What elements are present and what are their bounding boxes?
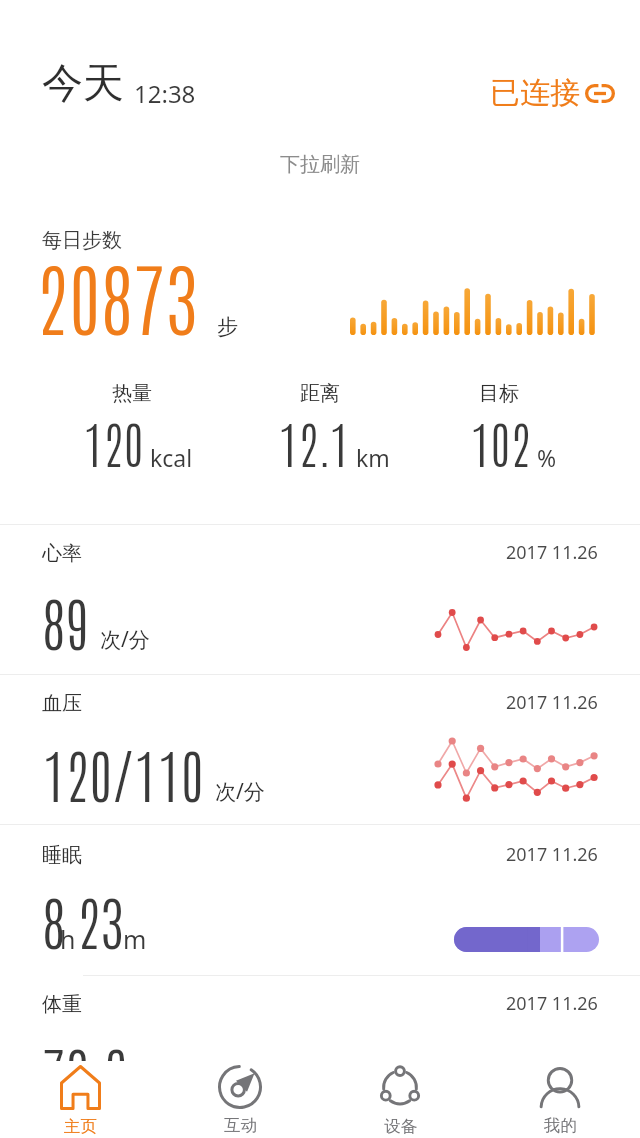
other: 互动 <box>218 1065 262 1109</box>
staticText: 120/110 <box>42 735 205 810</box>
staticText: 今天 <box>42 58 124 110</box>
staticText: kcal <box>150 442 193 473</box>
staticText: 23 <box>77 882 125 957</box>
staticText: 次/分 <box>100 625 150 654</box>
staticText: 102 <box>470 409 531 474</box>
staticText: 睡眠 <box>42 843 82 868</box>
staticText: % <box>537 442 557 473</box>
staticText: h <box>60 922 76 956</box>
staticText: 互动 <box>224 1115 257 1136</box>
staticText: 次/分 <box>215 777 265 806</box>
other: 设备 <box>378 1065 422 1110</box>
other: Connected <box>585 84 615 103</box>
staticText: 体重 <box>42 992 82 1017</box>
staticText: 2017 11.26 <box>506 540 598 565</box>
button[interactable]: 已连接 <box>484 68 621 118</box>
button[interactable]: 我的 <box>480 1061 640 1136</box>
staticText: 每日步数 <box>42 228 122 253</box>
staticText: 设备 <box>384 1116 417 1137</box>
button[interactable]: 互动 <box>160 1061 320 1136</box>
staticText: 89 <box>42 583 90 658</box>
staticText: 下拉刷新 <box>280 152 360 177</box>
staticText: 78.6 <box>42 1033 128 1108</box>
other: 我的 <box>539 1065 581 1109</box>
button[interactable]: 主页 <box>0 1061 160 1137</box>
button[interactable]: 设备 <box>320 1061 480 1137</box>
staticText: 2017 11.26 <box>506 690 598 715</box>
staticText: 8 <box>42 882 66 957</box>
staticText: 已连接 <box>490 74 580 112</box>
staticText: 120 <box>83 409 144 474</box>
staticText: 12.1 <box>278 409 350 474</box>
staticText: 距离 <box>300 381 340 406</box>
staticText: 我的 <box>544 1115 577 1136</box>
staticText: 心率 <box>42 541 82 566</box>
staticText: 2017 11.26 <box>506 842 598 867</box>
staticText: 12:38 <box>134 77 196 110</box>
staticText: 血压 <box>42 691 82 716</box>
staticText: km <box>356 442 390 473</box>
staticText: 20873 <box>36 243 199 347</box>
staticText: m <box>123 922 147 956</box>
staticText: 热量 <box>112 381 152 406</box>
staticText: 目标 <box>479 381 519 406</box>
staticText: 2017 11.26 <box>506 991 598 1016</box>
staticText: 步 <box>217 314 238 340</box>
staticText: 主页 <box>64 1116 97 1137</box>
other: 主页 <box>60 1065 101 1110</box>
